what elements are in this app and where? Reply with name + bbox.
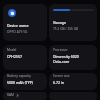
staticText: Processor	[53, 48, 68, 52]
staticText: CPH2557	[7, 54, 22, 59]
other: Device	[8, 9, 16, 17]
staticText: 5000 mAh (TYP)	[7, 80, 33, 85]
staticText: Dimensity 6020	[53, 54, 79, 59]
staticText: Battery capacity	[7, 74, 31, 78]
staticText: Screen size	[53, 74, 70, 78]
button[interactable]: Processor	[49, 45, 97, 70]
button[interactable]: Model	[3, 45, 47, 70]
button[interactable]: Battery capacity	[3, 73, 47, 90]
staticText: Octa-core	[53, 59, 70, 64]
staticText: 6.72 in	[53, 80, 65, 85]
staticText: RAM	[7, 93, 14, 97]
button[interactable]: RAM	[3, 92, 47, 100]
staticText: OPPO A79 5G	[7, 30, 28, 34]
staticText: Device name	[7, 23, 29, 28]
staticText: Storage	[53, 20, 66, 25]
staticText: Model	[7, 48, 17, 52]
staticText: 75.2 GB / 256 GB	[53, 27, 79, 31]
button[interactable]: Storage	[49, 4, 97, 41]
button[interactable]: Device	[3, 4, 47, 41]
button[interactable]: Screen size	[49, 73, 97, 90]
